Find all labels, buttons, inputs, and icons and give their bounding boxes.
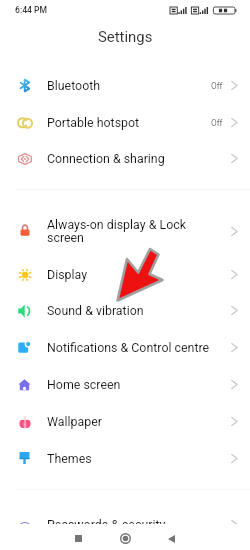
button[interactable]: Display bbox=[0, 256, 250, 293]
staticText: Off bbox=[211, 81, 223, 91]
button[interactable]: Portable hotspot bbox=[0, 104, 250, 141]
button[interactable]: Bluetooth bbox=[0, 67, 250, 104]
button[interactable]: Passwords & security bbox=[0, 506, 250, 524]
staticText: Portable hotspot bbox=[47, 115, 207, 130]
button[interactable]: Home screen bbox=[0, 366, 250, 403]
button[interactable]: Connection & sharing bbox=[0, 140, 250, 177]
staticText: Wallpaper bbox=[47, 414, 227, 429]
button[interactable]: Sound & vibration bbox=[0, 292, 250, 329]
staticText: Home screen bbox=[47, 377, 227, 392]
staticText: Sound & vibration bbox=[47, 303, 227, 318]
staticText: Passwords & security bbox=[47, 517, 227, 524]
button[interactable]: Always-on display & Lock screen bbox=[0, 208, 250, 254]
staticText: Notifications & Control centre bbox=[47, 340, 227, 355]
staticText: Settings bbox=[98, 28, 153, 45]
staticText: Off bbox=[211, 118, 223, 128]
staticText: 6:44 PM bbox=[15, 5, 48, 15]
staticText: Themes bbox=[47, 451, 227, 466]
button[interactable]: Recents bbox=[62, 527, 94, 550]
staticText: Connection & sharing bbox=[47, 151, 227, 166]
staticText: Always-on display & Lock screen bbox=[47, 217, 227, 245]
button[interactable]: Home bbox=[109, 527, 141, 550]
staticText: Bluetooth bbox=[47, 78, 207, 93]
staticText: Display bbox=[47, 267, 227, 282]
button[interactable]: Wallpaper bbox=[0, 403, 250, 440]
button[interactable]: Themes bbox=[0, 440, 250, 477]
button[interactable]: Back bbox=[155, 527, 187, 550]
button[interactable]: Notifications & Control centre bbox=[0, 329, 250, 366]
